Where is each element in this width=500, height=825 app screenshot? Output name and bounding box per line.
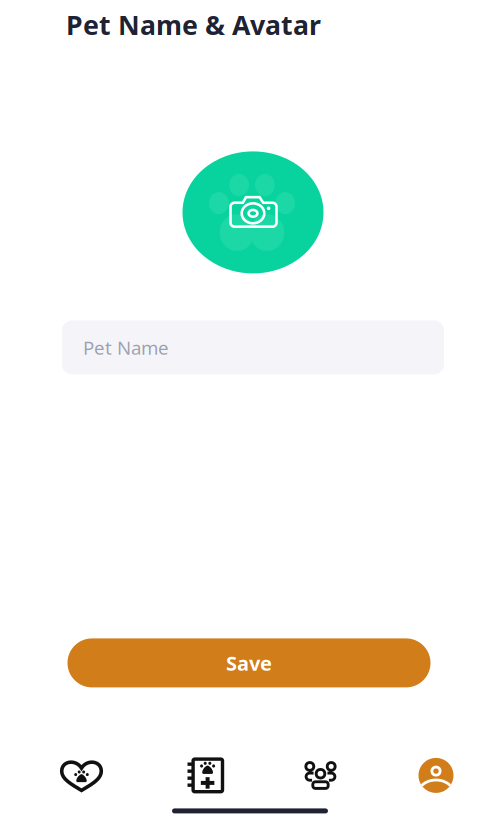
staticText: Pet Name	[83, 335, 169, 360]
button[interactable]: Save	[67, 638, 430, 687]
button[interactable]: Profile	[374, 753, 498, 797]
staticText: Save	[226, 650, 272, 676]
button[interactable]: Journal	[143, 753, 267, 797]
button[interactable]: Choose pet photo	[182, 151, 323, 273]
button[interactable]: Community	[267, 753, 374, 797]
button[interactable]: Favorites	[20, 753, 143, 797]
staticText: Pet Name & Avatar	[66, 7, 321, 42]
